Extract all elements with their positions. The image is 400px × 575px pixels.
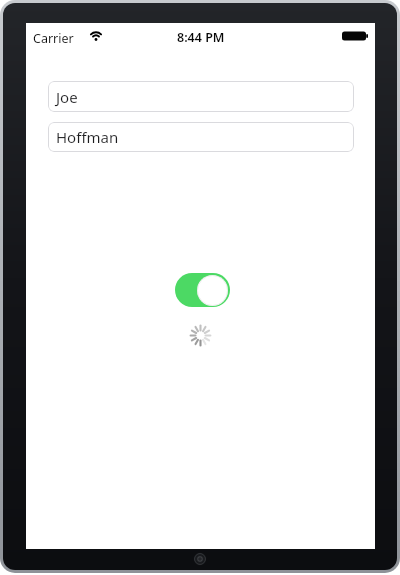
staticText: Hoffman	[56, 127, 119, 147]
staticText: Carrier	[33, 30, 74, 47]
button[interactable]: Hoffman	[48, 122, 354, 152]
staticText: 8:44 PM	[177, 29, 225, 46]
button[interactable]	[175, 273, 230, 307]
staticText: Joe	[56, 87, 78, 107]
button[interactable]	[193, 552, 207, 566]
button[interactable]: Joe	[48, 81, 354, 112]
